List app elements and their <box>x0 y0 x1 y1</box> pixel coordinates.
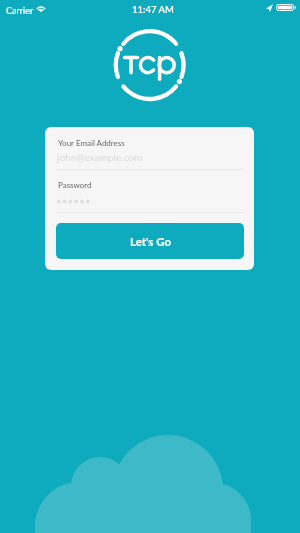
staticText: Carrier <box>6 5 34 16</box>
other: Location active <box>266 4 273 12</box>
staticText: 11:47 AM <box>132 4 174 15</box>
staticText: Your Email Address <box>58 138 125 148</box>
staticText: Let's Go <box>130 235 172 249</box>
staticText: john@example.com <box>57 151 143 163</box>
other: Battery full <box>276 4 296 11</box>
staticText: Password <box>58 180 92 190</box>
button[interactable]: Let's Go <box>56 223 244 259</box>
other: Wi-Fi signal <box>36 4 46 12</box>
